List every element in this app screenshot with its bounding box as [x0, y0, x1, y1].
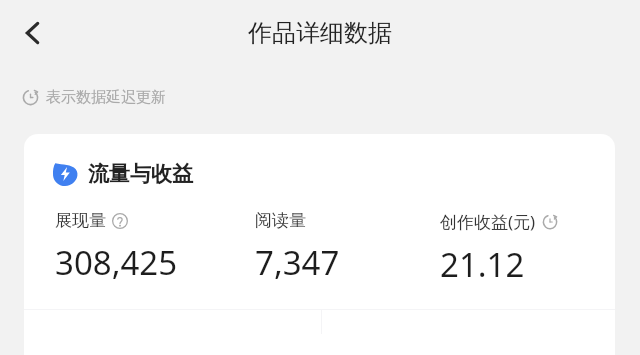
- button[interactable]: Back: [6, 6, 60, 60]
- staticText: 21.12: [440, 242, 525, 287]
- staticText: 创作收益(元): [440, 210, 536, 233]
- staticText: 流量与收益: [88, 161, 193, 187]
- staticText: 7,347: [255, 240, 340, 285]
- button[interactable]: 流量与收益: [52, 160, 193, 187]
- staticText: 展现量: [55, 210, 106, 231]
- staticText: 表示数据延迟更新: [46, 88, 166, 107]
- staticText: 作品详细数据: [248, 18, 392, 48]
- button[interactable]: 阅读量: [255, 210, 409, 285]
- button[interactable]: 表示数据延迟更新: [22, 88, 166, 107]
- staticText: 308,425: [55, 240, 178, 285]
- button[interactable]: 展现量: [55, 210, 224, 285]
- button[interactable]: 创作收益(元): [440, 210, 609, 287]
- staticText: 阅读量: [255, 210, 306, 231]
